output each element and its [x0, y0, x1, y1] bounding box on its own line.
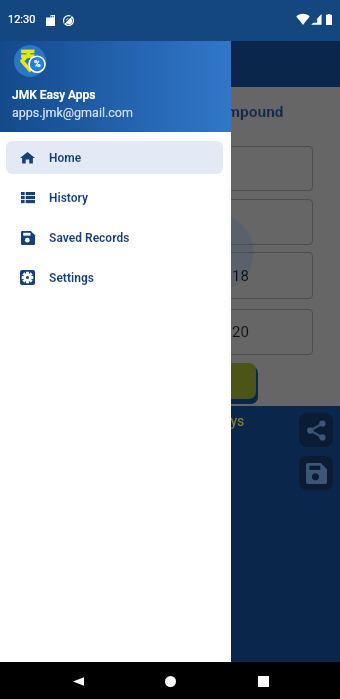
button[interactable]: Save: [299, 456, 333, 490]
button[interactable]: History: [6, 181, 223, 214]
staticText: 12:30: [8, 13, 36, 26]
staticText: Settings: [49, 271, 94, 285]
staticText: 20: [232, 323, 249, 341]
staticText: %: [34, 59, 41, 70]
staticText: History: [49, 191, 89, 205]
button[interactable]: Recents: [248, 666, 278, 696]
staticText: 18: [232, 267, 249, 285]
staticText: Saved Records: [49, 231, 130, 245]
button[interactable]: Home: [155, 666, 185, 696]
button[interactable]: Settings: [6, 261, 223, 294]
staticText: Total Days: [179, 413, 245, 429]
staticText: Simple / Compound: [146, 103, 284, 121]
staticText: apps.jmk@gmail.com: [12, 105, 133, 120]
button[interactable]: Saved Records: [6, 221, 223, 254]
button[interactable]: Home: [6, 141, 223, 174]
button[interactable]: Share: [299, 413, 333, 447]
button[interactable]: [14, 363, 256, 399]
button[interactable]: Back: [63, 666, 93, 696]
staticText: Home: [49, 151, 82, 165]
staticText: JMK Easy Apps: [12, 88, 96, 102]
